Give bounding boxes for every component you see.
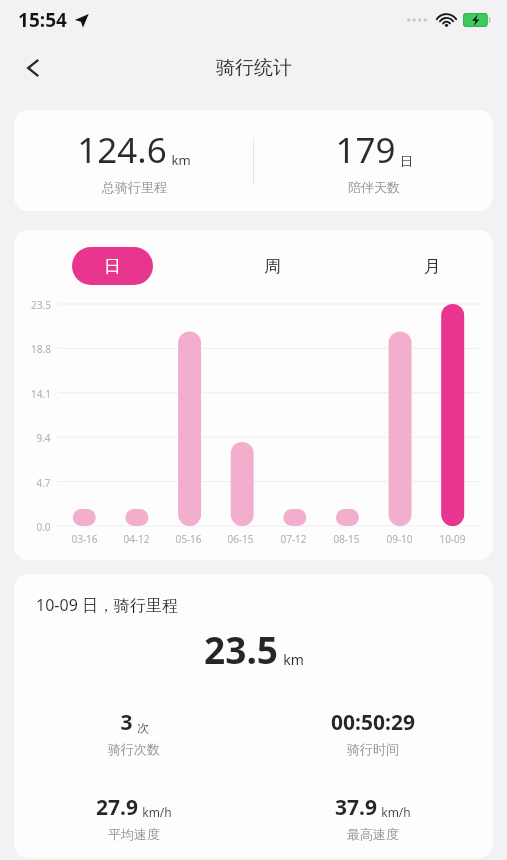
staticText: 骑行时间 [347, 741, 399, 757]
staticText: 04-12 [123, 532, 150, 546]
staticText: 10-09 [439, 532, 466, 546]
staticText: 次 [137, 720, 149, 735]
staticText: 23.5 [31, 298, 51, 312]
staticText: 最高速度 [347, 826, 399, 842]
staticText: 27.9 [96, 793, 138, 822]
staticText: km [171, 151, 191, 169]
staticText: 骑行统计 [216, 56, 292, 80]
staticText: 06-15 [227, 532, 254, 546]
staticText: 00:50:29 [331, 708, 415, 737]
staticText: 18.8 [31, 342, 51, 356]
button[interactable]: 124.6 [14, 110, 493, 211]
staticText: 05-16 [175, 532, 202, 546]
staticText: 4.7 [36, 476, 51, 490]
staticText: 0.0 [36, 520, 51, 534]
staticText: 08-15 [333, 532, 360, 546]
staticText: 9.4 [36, 431, 51, 445]
button[interactable]: 月 [392, 247, 473, 285]
staticText: 15:54 [18, 7, 67, 33]
staticText: 陪伴天数 [348, 179, 400, 195]
button[interactable]: 周 [232, 247, 313, 285]
staticText: km/h [142, 804, 172, 820]
staticText: 23.5 [204, 624, 278, 674]
staticText: 14.1 [31, 387, 51, 401]
staticText: 37.9 [335, 793, 377, 822]
staticText: 骑行次数 [108, 741, 160, 757]
button[interactable]: Back [10, 45, 56, 91]
staticText: 10-09 日，骑行里程 [36, 594, 178, 616]
staticText: km/h [381, 804, 411, 820]
staticText: 日 [104, 256, 121, 277]
staticText: 日 [400, 153, 413, 169]
staticText: 07-12 [280, 532, 307, 546]
staticText: 09-10 [386, 532, 413, 546]
staticText: 03-16 [71, 532, 98, 546]
staticText: 179 [335, 126, 396, 174]
staticText: 3 [120, 708, 133, 737]
staticText: 平均速度 [108, 826, 160, 842]
staticText: 总骑行里程 [102, 179, 167, 195]
staticText: 月 [424, 256, 441, 277]
staticText: km [283, 650, 304, 669]
staticText: 周 [264, 256, 281, 277]
button[interactable]: 日 [72, 247, 153, 285]
staticText: 124.6 [77, 126, 167, 174]
